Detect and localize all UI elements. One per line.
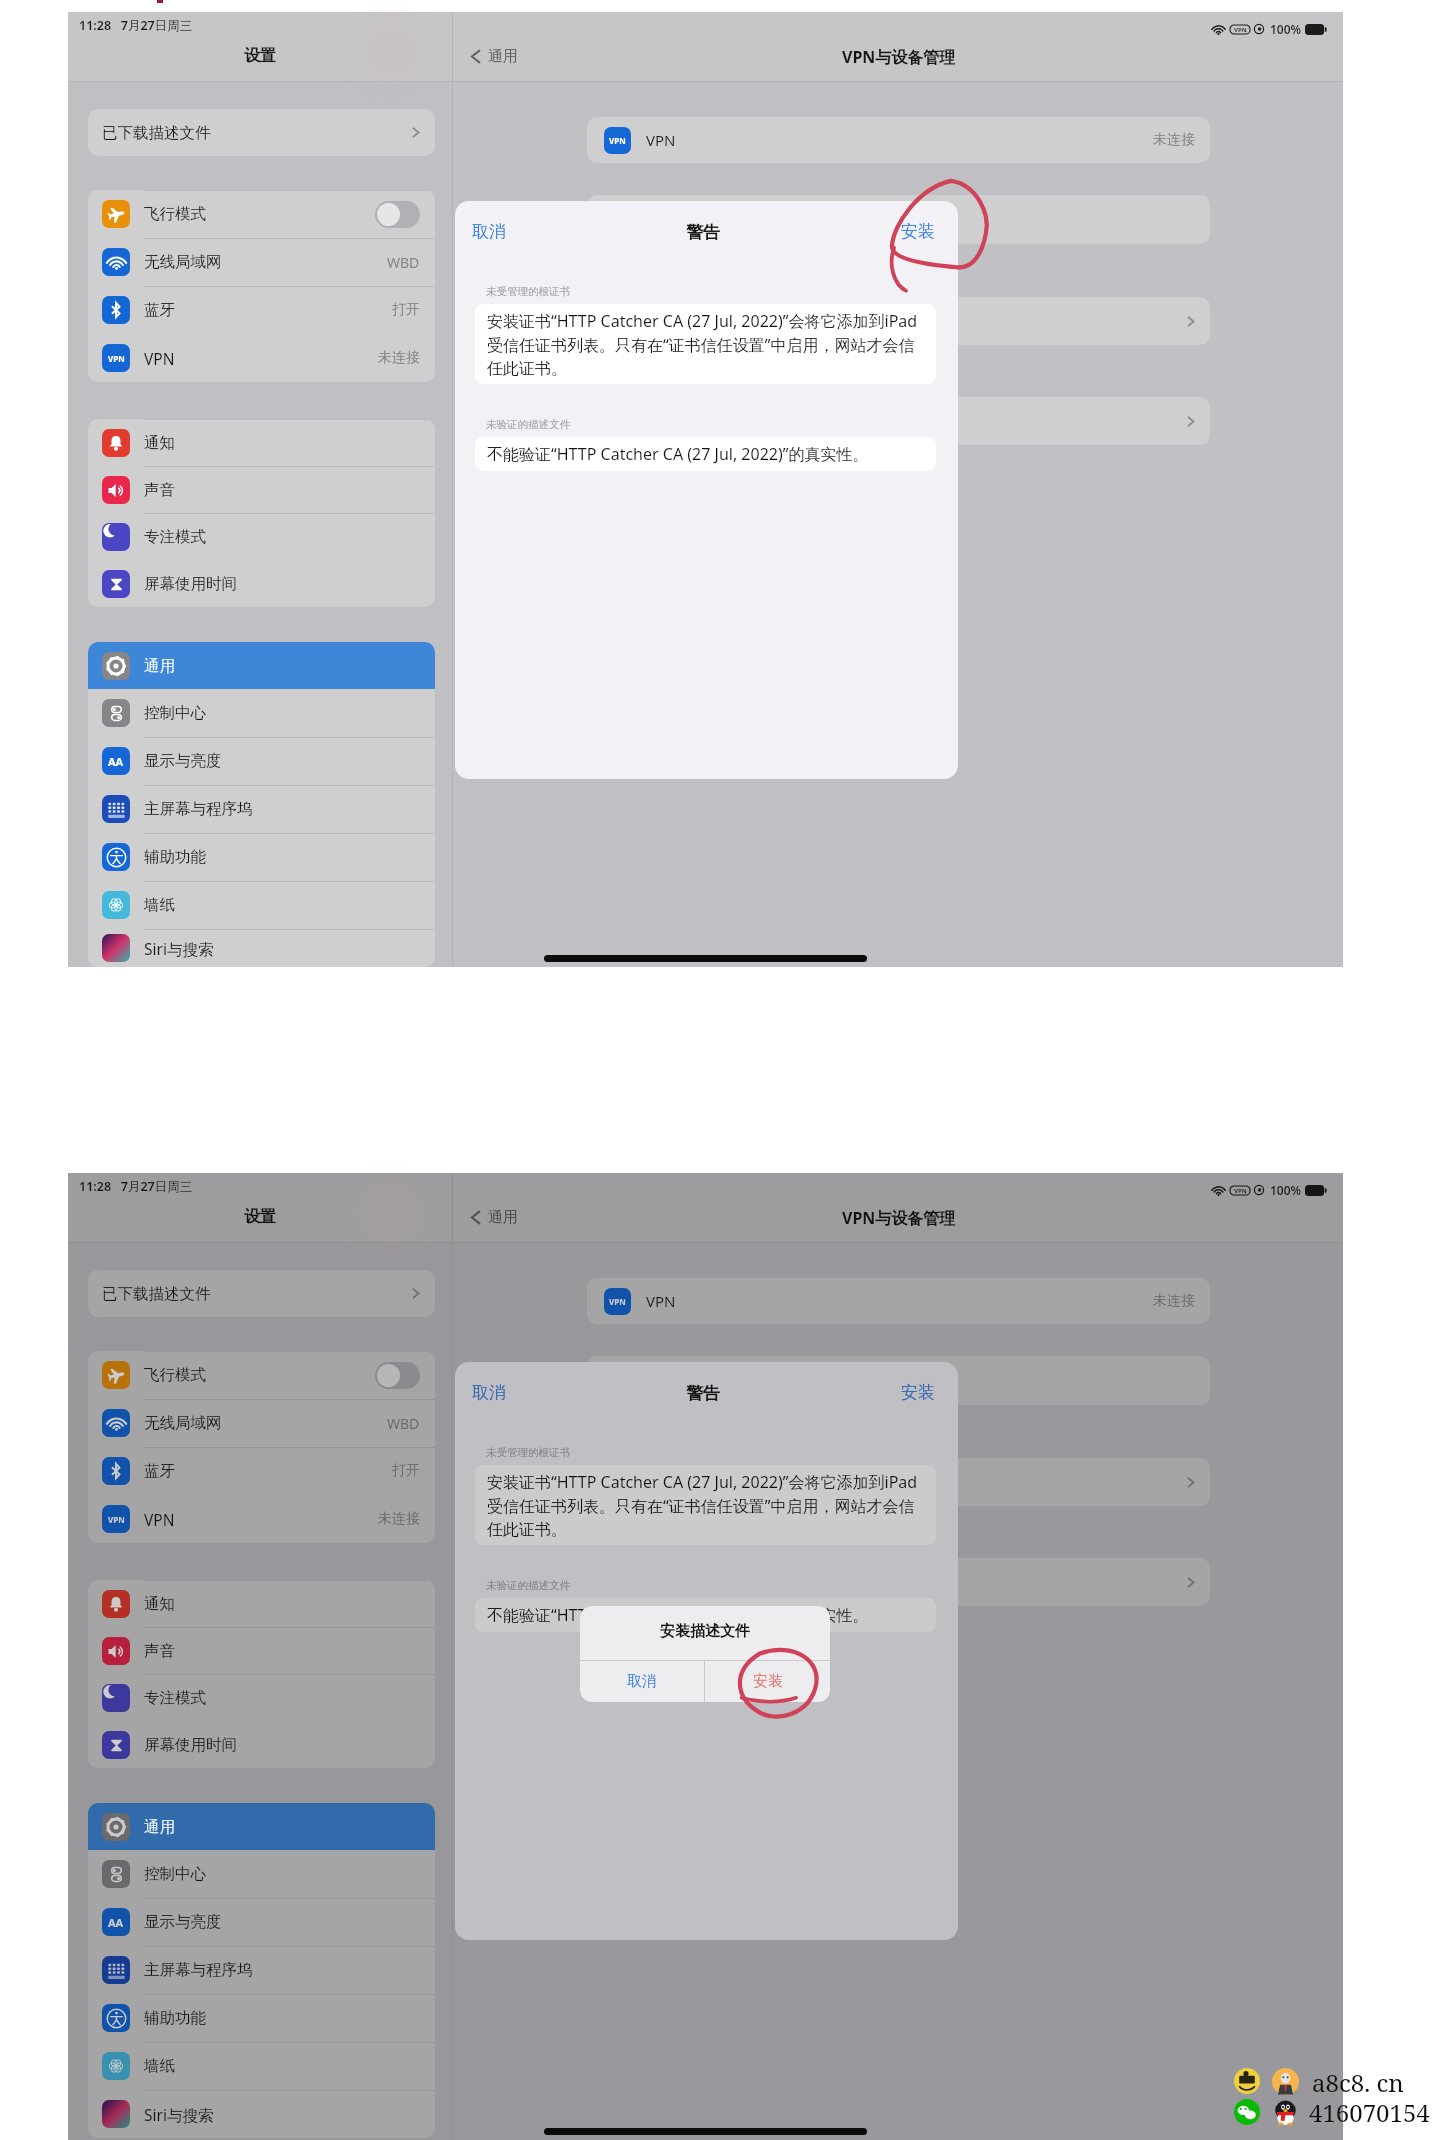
staticText: Siri与搜索 xyxy=(144,2104,214,2125)
button[interactable]: 主屏幕与程序坞 xyxy=(88,1946,435,1994)
staticText: 警告 xyxy=(686,1383,720,1404)
button[interactable]: 辅助功能 xyxy=(88,1994,435,2042)
staticText: 已下载描述文件 xyxy=(102,123,211,143)
staticText: 11:28 7月27日周三 xyxy=(79,1178,193,1195)
staticText: 已下载描述文件 xyxy=(102,1284,211,1304)
button[interactable]: AA xyxy=(88,1898,435,1946)
staticText: 11:28 7月27日周三 xyxy=(79,17,193,34)
staticText: 安装 xyxy=(901,1382,935,1403)
staticText: 416070154 xyxy=(1309,2096,1430,2129)
staticText: 不能验证“HTTP Catcher CA (27 Jul, 2022)”的真实性… xyxy=(487,1604,869,1626)
staticText: 未受管理的根证书 xyxy=(486,1446,570,1459)
button[interactable]: 取消 xyxy=(459,212,519,250)
staticText: 安装 xyxy=(901,221,935,242)
button[interactable]: AA xyxy=(88,737,435,785)
button[interactable]: 通用 xyxy=(88,1803,435,1850)
staticText: 无线局域网 xyxy=(144,1413,222,1433)
button[interactable]: 无线局域网 xyxy=(88,1399,435,1447)
button[interactable]: 声音 xyxy=(88,1627,435,1674)
button[interactable]: 安装 xyxy=(888,1373,948,1411)
button[interactable]: Certificate trust settings xyxy=(587,1558,1210,1606)
staticText: 屏幕使用时间 xyxy=(144,574,237,594)
staticText: 主屏幕与程序坞 xyxy=(144,799,253,819)
button[interactable]: 飞行模式 xyxy=(88,1351,435,1399)
button[interactable]: 通用 xyxy=(469,1203,518,1228)
staticText: 通用 xyxy=(144,1817,175,1837)
staticText: 未受管理的根证书 xyxy=(486,285,570,298)
staticText: WBD xyxy=(387,253,420,272)
button[interactable]: 屏幕使用时间 xyxy=(88,1721,435,1768)
staticText: AA xyxy=(108,754,124,769)
staticText: 辅助功能 xyxy=(144,847,206,867)
staticText: VPN xyxy=(144,1509,175,1530)
staticText: 设置 xyxy=(244,1207,276,1227)
button[interactable]: 声音 xyxy=(88,466,435,513)
staticText: VPN xyxy=(609,1296,626,1307)
staticText: 通用 xyxy=(488,1208,518,1227)
button[interactable]: 专注模式 xyxy=(88,513,435,560)
staticText: 通知 xyxy=(144,433,175,453)
button[interactable]: Configuration profile xyxy=(587,1356,1210,1405)
button[interactable]: 已下载描述文件 xyxy=(88,1270,435,1317)
staticText: 飞行模式 xyxy=(144,204,206,224)
button[interactable]: 通用 xyxy=(469,42,518,67)
button[interactable]: Configuration profile xyxy=(587,195,1210,244)
button[interactable]: 取消 xyxy=(580,1661,704,1702)
button[interactable]: 安装 xyxy=(705,1661,830,1702)
button[interactable]: VPN xyxy=(88,334,435,382)
staticText: 屏幕使用时间 xyxy=(144,1735,237,1755)
button[interactable]: Siri与搜索 xyxy=(88,929,435,967)
button[interactable]: 辅助功能 xyxy=(88,833,435,881)
staticText: 声音 xyxy=(144,1641,175,1661)
button[interactable]: 主屏幕与程序坞 xyxy=(88,785,435,833)
button[interactable]: 无线局域网 xyxy=(88,238,435,286)
staticText: 打开 xyxy=(392,1462,420,1480)
staticText: 墙纸 xyxy=(144,895,175,915)
staticText: 取消 xyxy=(472,221,506,242)
button[interactable]: 墙纸 xyxy=(88,881,435,929)
staticText: a8c8. cn xyxy=(1312,2066,1404,2099)
button[interactable]: Airplane mode toggle xyxy=(375,1362,420,1389)
button[interactable]: 已下载描述文件 xyxy=(88,109,435,156)
staticText: 安装描述文件 xyxy=(660,1622,750,1641)
button[interactable]: 蓝牙 xyxy=(88,286,435,334)
button[interactable]: 墙纸 xyxy=(88,2042,435,2090)
staticText: VPN与设备管理 xyxy=(842,46,956,68)
button[interactable]: Downloaded profile xyxy=(587,1458,1210,1506)
staticText: 通用 xyxy=(144,656,175,676)
button[interactable]: VPN xyxy=(587,117,1210,163)
button[interactable]: 屏幕使用时间 xyxy=(88,560,435,607)
staticText: VPN xyxy=(108,353,125,364)
staticText: 飞行模式 xyxy=(144,1365,206,1385)
staticText: 专注模式 xyxy=(144,527,206,547)
button[interactable]: 专注模式 xyxy=(88,1674,435,1721)
button[interactable]: 取消 xyxy=(459,1373,519,1411)
button[interactable]: 飞行模式 xyxy=(88,190,435,238)
staticText: 蓝牙 xyxy=(144,1461,175,1481)
button[interactable]: 通用 xyxy=(88,642,435,689)
button[interactable]: VPN xyxy=(587,1278,1210,1324)
staticText: 未连接 xyxy=(378,1510,420,1528)
staticText: 声音 xyxy=(144,480,175,500)
staticText: VPN xyxy=(108,1514,125,1525)
button[interactable]: 通知 xyxy=(88,1580,435,1627)
button[interactable]: 蓝牙 xyxy=(88,1447,435,1495)
staticText: 控制中心 xyxy=(144,1864,206,1884)
staticText: 无线局域网 xyxy=(144,252,222,272)
staticText: 安装 xyxy=(753,1672,783,1691)
button[interactable]: 控制中心 xyxy=(88,1850,435,1898)
button[interactable]: Downloaded profile xyxy=(587,297,1210,345)
button[interactable]: VPN xyxy=(88,1495,435,1543)
button[interactable]: Certificate trust settings xyxy=(587,397,1210,445)
staticText: 不能验证“HTTP Catcher CA (27 Jul, 2022)”的真实性… xyxy=(487,443,869,465)
button[interactable]: 安装 xyxy=(888,212,948,250)
staticText: 设置 xyxy=(244,46,276,66)
button[interactable]: Siri与搜索 xyxy=(88,2090,435,2138)
staticText: 取消 xyxy=(627,1672,657,1691)
button[interactable]: Airplane mode toggle xyxy=(375,201,420,228)
staticText: 未验证的描述文件 xyxy=(486,418,570,431)
staticText: 通知 xyxy=(144,1594,175,1614)
staticText: AA xyxy=(108,1915,124,1930)
button[interactable]: 控制中心 xyxy=(88,689,435,737)
button[interactable]: 通知 xyxy=(88,419,435,466)
